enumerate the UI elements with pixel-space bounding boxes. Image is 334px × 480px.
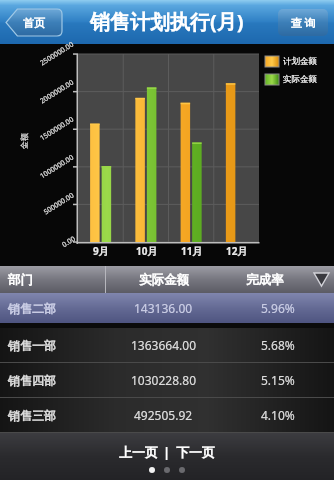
staticText: 2000000.00 xyxy=(38,78,76,106)
staticText: 4.10% xyxy=(261,407,295,423)
staticText: 1363664.00 xyxy=(131,337,196,353)
staticText: 完成率 xyxy=(246,272,284,288)
staticText: 5.15% xyxy=(261,372,295,388)
button[interactable]: 销售一部 xyxy=(0,328,334,362)
staticText: | xyxy=(163,443,171,461)
staticText: 金额 xyxy=(19,133,29,149)
staticText: 12月 xyxy=(226,244,248,258)
staticText: 5.96% xyxy=(261,300,295,316)
staticText: 11月 xyxy=(181,244,203,258)
staticText: 492505.92 xyxy=(134,407,193,423)
button[interactable]: 销售三部 xyxy=(0,398,334,432)
staticText: 9月 xyxy=(93,244,109,258)
staticText: 2500000.00 xyxy=(38,40,76,68)
button[interactable]: 销售二部 xyxy=(0,293,334,323)
staticText: 销售一部 xyxy=(8,338,56,353)
button[interactable]: 首页 xyxy=(6,9,62,36)
staticText: 0.00 xyxy=(60,234,78,250)
staticText: 实际金额 xyxy=(139,272,189,288)
staticText: 部门 xyxy=(8,272,33,288)
staticText: 下一页 xyxy=(176,444,215,460)
staticText: 销售三部 xyxy=(8,408,56,423)
staticText: 上一页 xyxy=(119,444,158,460)
staticText: 首页 xyxy=(23,16,45,30)
staticText: 销售四部 xyxy=(8,373,56,388)
button[interactable]: Sort xyxy=(308,266,334,293)
staticText: 143136.00 xyxy=(134,300,193,316)
staticText: 实际金额 xyxy=(283,74,317,85)
staticText: 1500000.00 xyxy=(38,115,76,143)
staticText: 10月 xyxy=(136,244,158,258)
staticText: 1030228.80 xyxy=(131,372,196,388)
staticText: 计划金额 xyxy=(283,56,317,67)
button[interactable]: 下一页 xyxy=(171,442,220,462)
button[interactable]: 销售四部 xyxy=(0,363,334,397)
staticText: 1000000.00 xyxy=(38,153,76,181)
button[interactable]: 上一页 xyxy=(114,442,163,462)
button[interactable]: 查 询 xyxy=(278,9,328,36)
staticText: 销售计划执行(月) xyxy=(90,8,244,35)
staticText: 销售二部 xyxy=(8,301,56,316)
staticText: 5.68% xyxy=(261,337,295,353)
staticText: 查 询 xyxy=(291,15,316,30)
staticText: 500000.00 xyxy=(42,191,76,217)
